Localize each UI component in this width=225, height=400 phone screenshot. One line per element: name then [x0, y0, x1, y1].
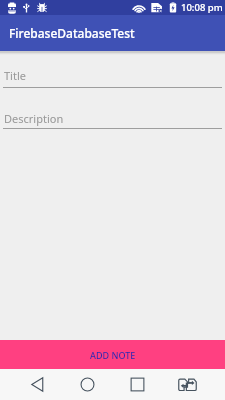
button[interactable]: Rotate screen [162, 369, 212, 400]
button[interactable]: Title [3, 64, 222, 89]
button[interactable]: Description [3, 107, 222, 130]
button[interactable]: Home [62, 369, 112, 400]
staticText: Description [4, 111, 64, 126]
staticText: FirebaseDatabaseTest [9, 25, 135, 41]
staticText: 10:08 pm [181, 1, 223, 14]
button[interactable]: Recent apps [112, 369, 162, 400]
staticText: ADD NOTE [90, 349, 136, 361]
staticText: Title [4, 68, 26, 83]
button[interactable]: Back [12, 369, 62, 400]
button[interactable]: ADD NOTE [0, 340, 225, 369]
